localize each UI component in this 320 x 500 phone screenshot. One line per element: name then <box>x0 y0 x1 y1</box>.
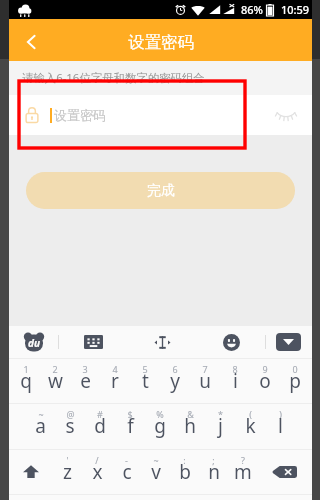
staticText: h <box>184 413 196 439</box>
staticText: l <box>278 413 283 439</box>
button[interactable]: ' <box>52 450 82 494</box>
staticText: p <box>289 368 301 394</box>
staticText: du <box>28 336 40 350</box>
button[interactable]: * <box>205 404 235 449</box>
staticText: 86% <box>241 2 263 17</box>
button[interactable]: 2 <box>40 359 70 403</box>
button[interactable]: 0 <box>280 359 310 403</box>
staticText: r <box>111 368 119 394</box>
button[interactable]: Emoji <box>218 329 244 355</box>
staticText: 4 <box>112 363 118 375</box>
button[interactable]: 1 <box>11 359 40 403</box>
button[interactable]: - <box>112 450 141 494</box>
button[interactable]: & <box>175 404 205 449</box>
staticText: u <box>199 368 211 394</box>
button[interactable]: 6 <box>160 359 190 403</box>
button[interactable]: # <box>85 404 115 449</box>
staticText: 7 <box>202 363 208 375</box>
button[interactable]: $ <box>115 404 145 449</box>
button[interactable]: 4 <box>100 359 130 403</box>
staticText: 完成 <box>147 182 175 200</box>
staticText: ) <box>279 408 282 420</box>
button[interactable]: 3 <box>70 359 100 403</box>
staticText: / <box>95 454 99 466</box>
staticText: w <box>48 368 63 394</box>
staticText: ' <box>66 454 69 466</box>
staticText: $ <box>127 408 133 420</box>
staticText: 设置密码 <box>128 32 194 53</box>
staticText: ~ <box>153 454 159 466</box>
staticText: e <box>80 368 91 394</box>
staticText: : <box>183 454 186 466</box>
staticText: @ <box>66 408 75 420</box>
button[interactable]: @ <box>55 404 85 449</box>
button[interactable]: Show password <box>271 100 301 130</box>
staticText: q <box>20 368 32 394</box>
button[interactable]: 8 <box>220 359 250 403</box>
staticText: 设置密码 <box>54 107 106 123</box>
staticText: d <box>94 413 106 439</box>
staticText: 5 <box>142 363 148 375</box>
button[interactable]: ? <box>228 450 257 494</box>
staticText: ; <box>212 454 215 466</box>
staticText: k <box>245 413 256 439</box>
staticText: * <box>218 408 223 420</box>
button[interactable]: 9 <box>250 359 280 403</box>
staticText: t <box>142 368 149 394</box>
staticText: a <box>35 413 46 439</box>
staticText: i <box>233 368 238 394</box>
staticText: b <box>179 459 191 485</box>
button[interactable]: ) <box>265 404 295 449</box>
staticText: n <box>208 459 220 485</box>
button[interactable]: % <box>145 404 175 449</box>
button[interactable]: Backspace <box>257 450 312 494</box>
staticText: % <box>156 408 164 420</box>
button[interactable]: Hide keyboard <box>276 333 301 351</box>
button[interactable]: Baidu input <box>22 330 46 354</box>
staticText: m <box>234 459 252 485</box>
staticText: g <box>154 413 166 439</box>
staticText: 0 <box>292 363 298 375</box>
staticText: 6 <box>172 363 178 375</box>
button[interactable]: ~ <box>141 450 170 494</box>
staticText: 2 <box>52 363 58 375</box>
button[interactable]: Move cursor <box>149 329 175 355</box>
staticText: 请输入6-16位字母和数字的密码组合 <box>22 70 205 86</box>
button[interactable]: 完成 <box>26 172 295 209</box>
staticText: 9 <box>262 363 268 375</box>
button[interactable]: Back <box>9 19 51 61</box>
staticText: x <box>92 459 103 485</box>
staticText: v <box>151 459 161 485</box>
staticText: c <box>122 459 132 485</box>
staticText: s <box>65 413 75 439</box>
staticText: y <box>170 368 180 394</box>
staticText: 10:59 <box>281 2 310 17</box>
button[interactable]: : <box>170 450 199 494</box>
staticText: f <box>127 413 134 439</box>
button[interactable]: ~ <box>26 404 55 449</box>
staticText: & <box>187 408 194 420</box>
staticText: ( <box>249 408 252 420</box>
button[interactable]: / <box>82 450 112 494</box>
staticText: ~ <box>38 408 44 420</box>
staticText: ? <box>241 454 245 466</box>
staticText: # <box>97 408 103 420</box>
button[interactable]: 5 <box>130 359 160 403</box>
button[interactable]: 7 <box>190 359 220 403</box>
staticText: 3 <box>82 363 88 375</box>
staticText: z <box>63 459 72 485</box>
button[interactable]: ( <box>235 404 265 449</box>
staticText: o <box>259 368 271 394</box>
button[interactable]: Keyboard layout <box>80 329 106 355</box>
button[interactable]: ; <box>199 450 228 494</box>
button[interactable]: Shift <box>9 450 52 494</box>
staticText: 8 <box>232 363 238 375</box>
staticText: j <box>218 413 223 439</box>
staticText: - <box>125 454 128 466</box>
staticText: 1 <box>23 363 29 375</box>
